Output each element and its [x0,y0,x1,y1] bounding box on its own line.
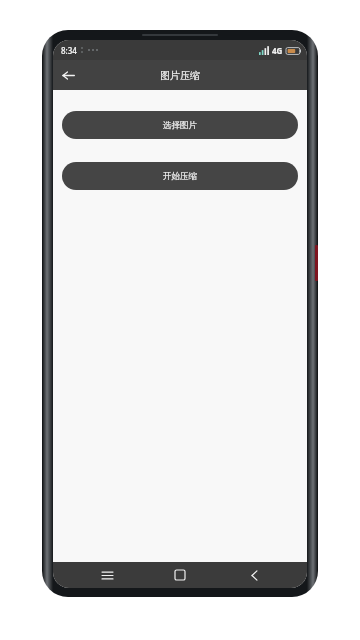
staticText: 开始压缩 [163,171,197,182]
button[interactable]: Back [53,60,83,90]
staticText: 选择图片 [163,120,197,131]
staticText: 8:34 [61,45,77,56]
button[interactable]: Back [234,562,274,588]
staticText: 图片压缩 [160,69,200,82]
button[interactable]: 选择图片 [62,111,298,139]
button[interactable]: Home [160,562,200,588]
button[interactable]: Recent apps [87,562,127,588]
button[interactable]: 开始压缩 [62,162,298,190]
staticText: 4G [272,45,283,56]
